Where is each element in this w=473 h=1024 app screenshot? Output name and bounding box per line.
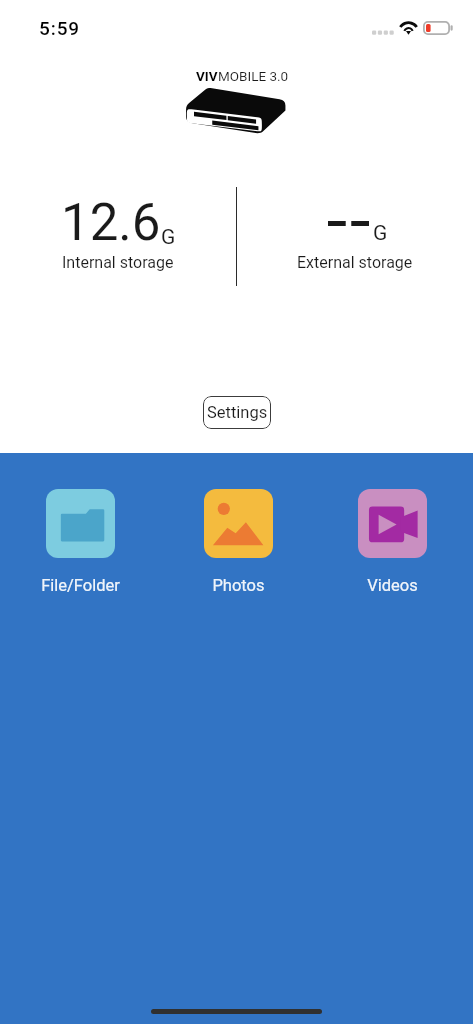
other: Videos <box>358 489 427 558</box>
staticText: Photos <box>212 576 265 595</box>
button[interactable]: Photos <box>158 489 318 595</box>
button[interactable]: File/Folder <box>0 489 160 595</box>
staticText: MOBILE 3.0 <box>218 68 289 84</box>
staticText: Videos <box>367 576 418 595</box>
staticText: External storage <box>297 253 413 272</box>
staticText: VIV <box>196 68 218 84</box>
button[interactable]: Videos <box>312 489 472 595</box>
other: Photos <box>204 489 273 558</box>
staticText: 12.6 <box>61 193 161 253</box>
staticText: G <box>161 225 176 250</box>
staticText: Settings <box>207 403 268 422</box>
button[interactable]: Settings <box>203 396 271 429</box>
staticText: Internal storage <box>62 253 174 272</box>
staticText: G <box>373 221 388 246</box>
staticText: 5:59 <box>39 17 81 39</box>
staticText: File/Folder <box>41 576 120 595</box>
other: File/Folder <box>46 489 115 558</box>
